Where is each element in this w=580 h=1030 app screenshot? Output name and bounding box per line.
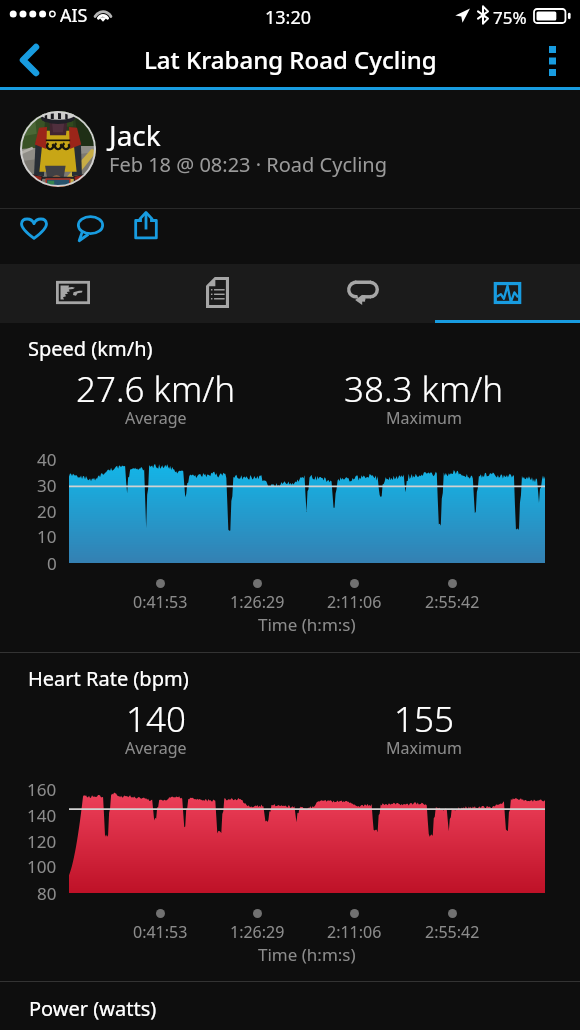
staticText: 2:11:06 — [327, 591, 382, 613]
staticText: 160 — [27, 778, 57, 801]
staticText: 13:20 — [265, 5, 312, 30]
staticText: 120 — [27, 830, 57, 853]
staticText: Maximum — [386, 407, 462, 429]
staticText: 75% — [493, 6, 527, 29]
staticText: Heart Rate (bpm) — [28, 665, 189, 692]
staticText: 2:55:42 — [425, 591, 480, 613]
staticText: 100 — [27, 855, 57, 878]
staticText: 2:11:06 — [327, 921, 382, 943]
staticText: Maximum — [386, 737, 462, 759]
staticText: Feb 18 @ 08:23 · Road Cycling — [109, 151, 387, 178]
button[interactable]: Details — [145, 264, 290, 323]
staticText: 1:26:29 — [230, 591, 285, 613]
button[interactable]: Share — [120, 200, 172, 254]
staticText: Average — [125, 737, 187, 759]
staticText: 20 — [37, 500, 57, 523]
button[interactable]: Comment — [64, 200, 116, 254]
button[interactable]: Charts — [435, 264, 580, 323]
staticText: Lat Krabang Road Cycling — [144, 43, 437, 76]
staticText: Speed (km/h) — [28, 335, 153, 362]
staticText: Time (h:m:s) — [258, 613, 356, 636]
staticText: 30 — [37, 474, 57, 497]
button[interactable]: Laps — [290, 264, 435, 323]
staticText: AIS — [60, 3, 88, 28]
staticText: 0:41:53 — [133, 591, 188, 613]
button[interactable]: More options — [525, 32, 580, 87]
staticText: 2:55:42 — [425, 921, 480, 943]
staticText: Average — [125, 407, 187, 429]
staticText: 140 — [126, 695, 186, 743]
button[interactable]: Back — [2, 32, 56, 87]
button[interactable]: Like — [8, 200, 60, 254]
staticText: 0 — [47, 552, 57, 575]
staticText: 27.6 km/h — [76, 365, 236, 413]
staticText: Jack — [109, 116, 161, 154]
staticText: Power (watts) — [29, 995, 157, 1022]
button[interactable]: Map — [0, 264, 145, 323]
staticText: 80 — [37, 882, 57, 905]
staticText: 40 — [37, 448, 57, 471]
staticText: 10 — [37, 525, 57, 548]
staticText: 140 — [27, 804, 57, 827]
staticText: 0:41:53 — [133, 921, 188, 943]
staticText: 38.3 km/h — [344, 365, 504, 413]
staticText: 155 — [394, 695, 454, 743]
staticText: 1:26:29 — [230, 921, 285, 943]
staticText: Time (h:m:s) — [258, 943, 356, 966]
